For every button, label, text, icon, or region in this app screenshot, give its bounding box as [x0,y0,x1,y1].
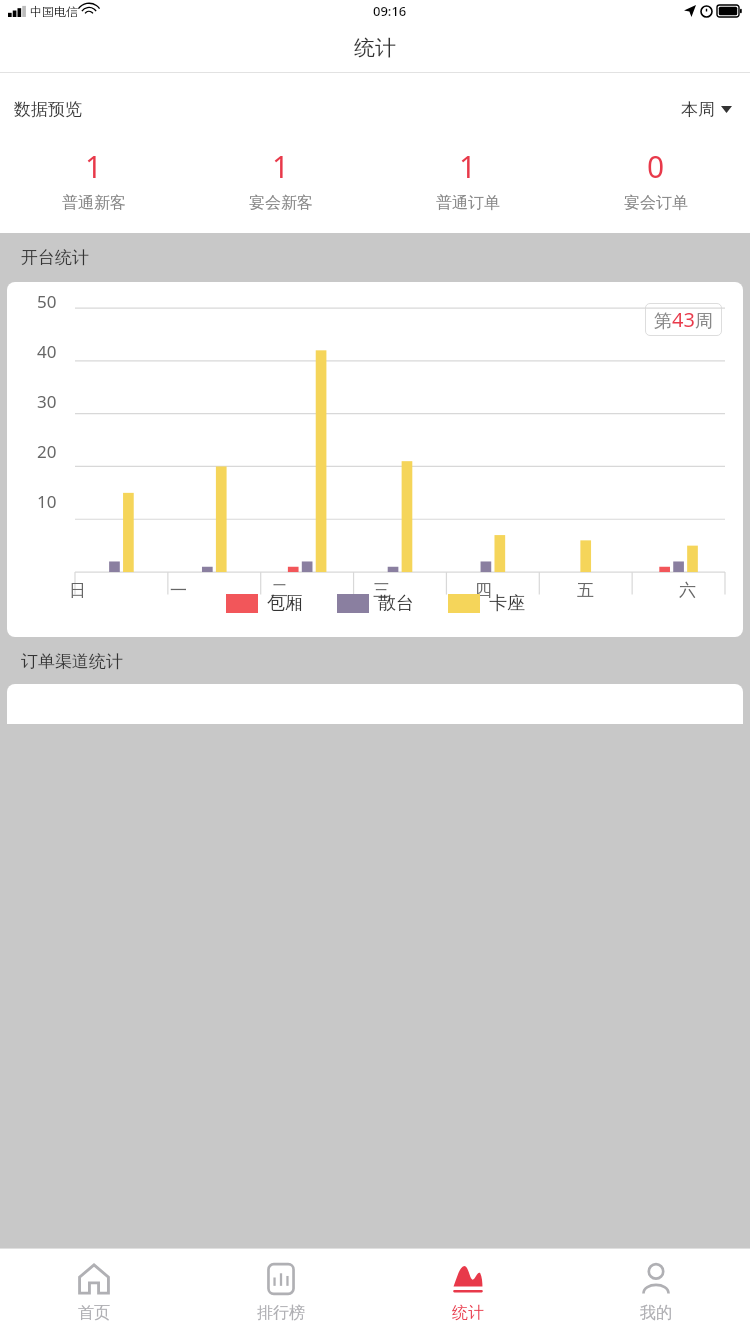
button[interactable]: 0 [562,146,750,213]
staticText: 1 [272,146,290,187]
staticText: 1 [459,146,477,187]
button[interactable]: 1 [187,146,374,213]
staticText: 六 [679,580,696,601]
staticText: 普通新客 [62,193,126,213]
staticText: 50 [37,290,57,313]
staticText: 宴会订单 [624,193,688,213]
button[interactable]: 1 [0,146,187,213]
other: 排行榜 [262,1260,300,1298]
button[interactable]: 本周 [677,95,736,124]
staticText: 40 [37,340,57,363]
staticText: 开台统计 [21,247,89,268]
other: 首页 [75,1260,113,1298]
staticText: 五 [577,580,594,601]
other: 统计 [449,1260,487,1298]
staticText: 散台 [378,592,414,615]
staticText: 10 [37,490,57,513]
staticText: 0 [647,146,665,187]
button[interactable]: 包厢 [226,592,303,615]
staticText: 20 [37,440,57,463]
staticText: 第43周 [654,306,713,333]
staticText: 统计 [452,1303,484,1323]
staticText: 日 [69,580,86,601]
staticText: 中国电信 [30,4,78,19]
staticText: 1 [85,146,103,187]
button[interactable]: 1 [374,146,562,213]
staticText: 本周 [681,99,715,120]
staticText: 统计 [354,35,396,61]
button[interactable]: 我的 [562,1248,750,1334]
staticText: 排行榜 [257,1303,305,1323]
staticText: 首页 [78,1303,110,1323]
staticText: 我的 [640,1303,672,1323]
staticText: 一 [170,580,187,601]
other: 我的 [637,1260,675,1298]
staticText: 数据预览 [14,99,82,120]
staticText: 四 [475,580,492,601]
staticText: 订单渠道统计 [21,651,123,672]
button[interactable]: 散台 [337,592,414,615]
button[interactable]: 首页 [0,1248,187,1334]
staticText: 09:16 [373,2,407,20]
staticText: 卡座 [489,592,525,615]
staticText: 包厢 [267,592,303,615]
button[interactable]: 第43周 [645,303,722,336]
staticText: 三 [373,580,390,601]
staticText: 二 [271,580,288,601]
button[interactable]: 排行榜 [187,1248,374,1334]
button[interactable]: 统计 [374,1248,562,1334]
button[interactable]: 卡座 [448,592,525,615]
staticText: 宴会新客 [249,193,313,213]
staticText: 普通订单 [436,193,500,213]
staticText: 30 [37,390,57,413]
